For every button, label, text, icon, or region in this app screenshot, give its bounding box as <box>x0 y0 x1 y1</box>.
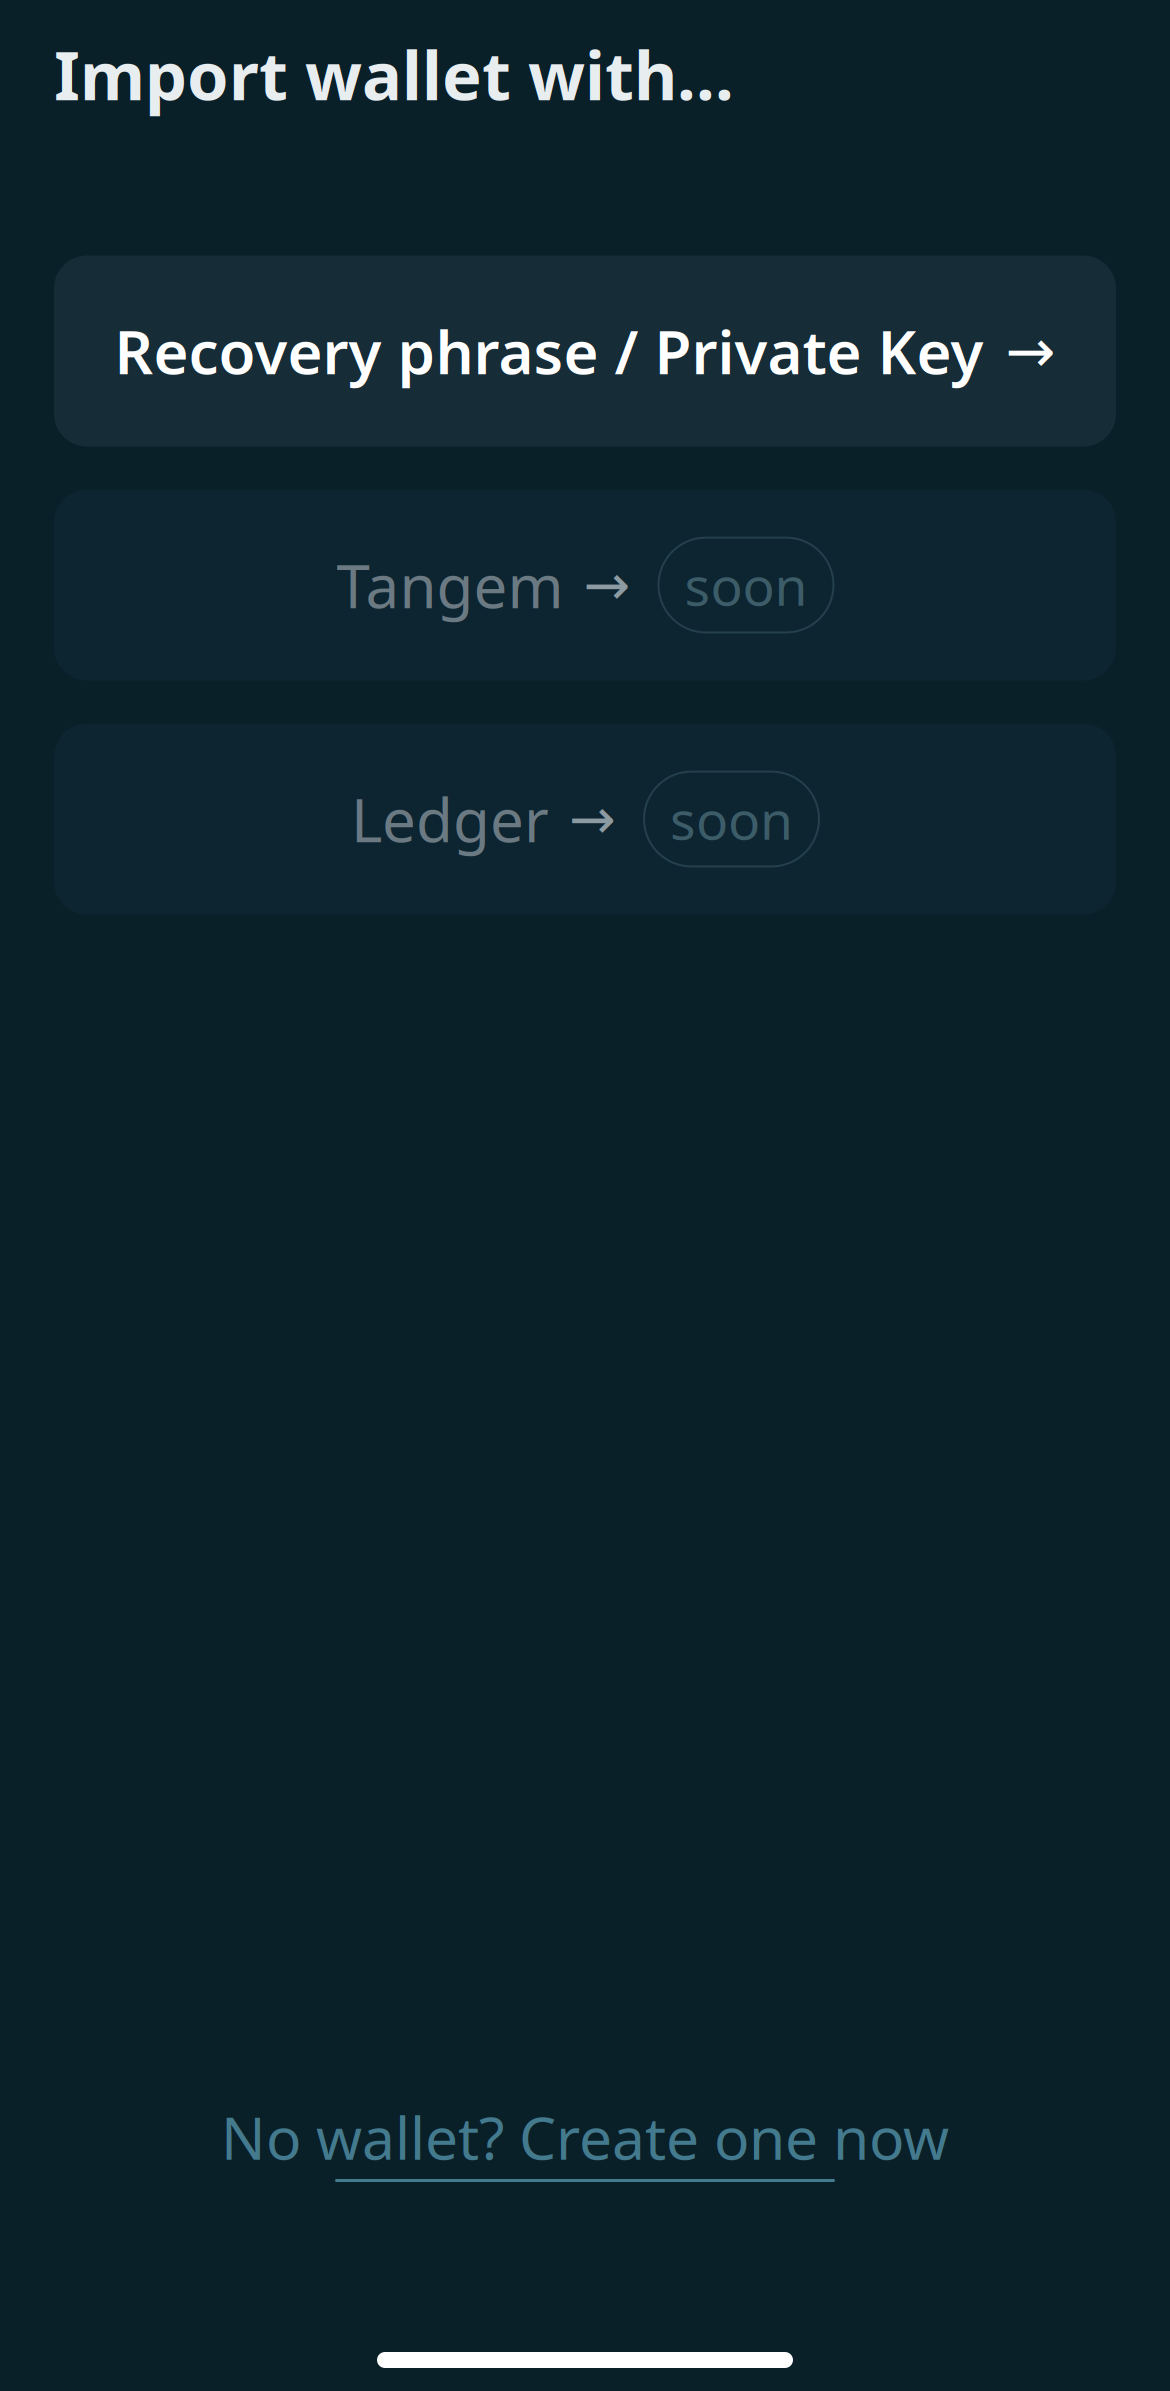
button[interactable]: Ledger <box>54 723 1116 914</box>
staticText: → <box>569 787 616 851</box>
staticText: Import wallet with... <box>54 30 734 118</box>
button[interactable]: No wallet? Create one now <box>0 2088 1170 2192</box>
staticText: No wallet? Create one now <box>221 2098 949 2176</box>
staticText: Tangem <box>336 545 563 625</box>
staticText: Ledger <box>351 779 549 859</box>
staticText: soon <box>670 784 793 854</box>
button[interactable]: Tangem <box>54 489 1116 680</box>
staticText: soon <box>684 550 807 620</box>
staticText: → <box>1005 317 1055 385</box>
staticText: Recovery phrase / Private Key <box>114 311 983 391</box>
staticText: → <box>583 553 630 617</box>
button[interactable]: Recovery phrase / Private Key <box>54 255 1116 446</box>
